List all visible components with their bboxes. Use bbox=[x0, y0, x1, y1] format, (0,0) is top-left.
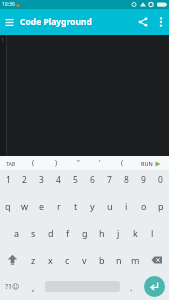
staticText: 1 bbox=[6, 174, 11, 186]
staticText: w bbox=[21, 200, 29, 212]
staticText: 0 bbox=[158, 174, 163, 186]
button[interactable]: x bbox=[42, 246, 59, 273]
button[interactable]: ( bbox=[111, 156, 133, 170]
button[interactable]: z bbox=[25, 246, 42, 273]
button[interactable]: v bbox=[76, 246, 93, 273]
button[interactable] bbox=[133, 9, 153, 35]
staticText: g bbox=[82, 227, 88, 239]
staticText: 5 bbox=[73, 174, 78, 186]
staticText: d bbox=[48, 227, 54, 239]
button[interactable]: 0 bbox=[152, 170, 169, 189]
staticText: ' bbox=[99, 158, 101, 168]
button[interactable]: s bbox=[25, 219, 42, 246]
button[interactable]: t bbox=[67, 193, 84, 219]
staticText: j bbox=[117, 227, 120, 239]
staticText: 4 bbox=[56, 174, 61, 186]
button[interactable]: 3 bbox=[33, 170, 50, 189]
button[interactable]: ( bbox=[22, 156, 45, 170]
button[interactable]: c bbox=[59, 246, 76, 273]
staticText: . bbox=[130, 281, 133, 293]
staticText: Code Playground bbox=[20, 16, 92, 28]
button[interactable]: 2 bbox=[16, 170, 33, 189]
staticText: 6 bbox=[90, 174, 95, 186]
staticText: n bbox=[116, 254, 122, 266]
staticText: RUN bbox=[141, 160, 153, 167]
button[interactable]: 7 bbox=[101, 170, 118, 189]
button[interactable] bbox=[140, 273, 169, 300]
staticText: z bbox=[31, 254, 36, 266]
staticText: ( bbox=[121, 158, 124, 168]
button[interactable]: h bbox=[93, 219, 110, 246]
staticText: 8 bbox=[124, 174, 129, 186]
staticText: i bbox=[125, 200, 128, 212]
button[interactable]: d bbox=[42, 219, 59, 246]
staticText: 1 bbox=[1, 36, 5, 44]
button[interactable]: e bbox=[33, 193, 50, 219]
button[interactable]: q bbox=[0, 193, 16, 219]
staticText: q bbox=[5, 200, 11, 212]
staticText: u bbox=[107, 200, 113, 212]
staticText: b bbox=[99, 254, 105, 266]
button[interactable]: r bbox=[50, 193, 67, 219]
button[interactable]: b bbox=[93, 246, 110, 273]
button[interactable]: 6 bbox=[84, 170, 101, 189]
staticText: 7 bbox=[107, 174, 112, 186]
staticText: ) bbox=[55, 158, 58, 168]
button[interactable]: TAB bbox=[0, 156, 22, 170]
staticText: t bbox=[74, 200, 78, 212]
button[interactable]: ?1☺ bbox=[0, 273, 25, 300]
staticText: f bbox=[66, 227, 70, 239]
button[interactable] bbox=[144, 246, 169, 273]
button[interactable]: k bbox=[127, 219, 144, 246]
button[interactable]: u bbox=[101, 193, 118, 219]
staticText: p bbox=[158, 200, 164, 212]
button[interactable]: a bbox=[8, 219, 25, 246]
button[interactable]: 9 bbox=[135, 170, 152, 189]
staticText: " bbox=[77, 158, 80, 168]
staticText: s bbox=[31, 227, 36, 239]
staticText: 9 bbox=[141, 174, 146, 186]
button[interactable]: ) bbox=[45, 156, 67, 170]
button[interactable]: 1 bbox=[0, 170, 16, 189]
button[interactable]: o bbox=[135, 193, 152, 219]
button[interactable]: 4 bbox=[50, 170, 67, 189]
button[interactable] bbox=[42, 273, 123, 300]
button[interactable]: m bbox=[127, 246, 144, 273]
staticText: o bbox=[141, 200, 147, 212]
staticText: 3 bbox=[39, 174, 44, 186]
staticText: y bbox=[90, 200, 95, 212]
button[interactable]: w bbox=[16, 193, 33, 219]
button[interactable]: g bbox=[76, 219, 93, 246]
button[interactable]: RUN bbox=[133, 156, 169, 170]
staticText: 2 bbox=[22, 174, 27, 186]
button[interactable]: 8 bbox=[118, 170, 135, 189]
button[interactable] bbox=[0, 9, 18, 35]
staticText: k bbox=[133, 227, 138, 239]
button[interactable]: i bbox=[118, 193, 135, 219]
staticText: ?1☺ bbox=[5, 282, 20, 292]
staticText: a bbox=[14, 227, 20, 239]
button[interactable]: l bbox=[144, 219, 161, 246]
staticText: h bbox=[99, 227, 105, 239]
button[interactable]: " bbox=[67, 156, 89, 170]
staticText: r bbox=[57, 200, 61, 212]
button[interactable]: ' bbox=[89, 156, 111, 170]
staticText: m bbox=[131, 254, 140, 266]
button[interactable] bbox=[153, 9, 169, 35]
button[interactable]: j bbox=[110, 219, 127, 246]
button[interactable]: . bbox=[123, 273, 140, 300]
button[interactable]: f bbox=[59, 219, 76, 246]
staticText: 10:36 bbox=[2, 1, 15, 8]
staticText: x bbox=[48, 254, 53, 266]
button[interactable]: p bbox=[152, 193, 169, 219]
button[interactable] bbox=[0, 246, 25, 273]
button[interactable]: 5 bbox=[67, 170, 84, 189]
button[interactable]: y bbox=[84, 193, 101, 219]
button[interactable]: n bbox=[110, 246, 127, 273]
staticText: v bbox=[82, 254, 87, 266]
staticText: , bbox=[32, 281, 35, 293]
staticText: e bbox=[39, 200, 45, 212]
staticText: TAB bbox=[6, 160, 16, 167]
button[interactable]: , bbox=[25, 273, 42, 300]
